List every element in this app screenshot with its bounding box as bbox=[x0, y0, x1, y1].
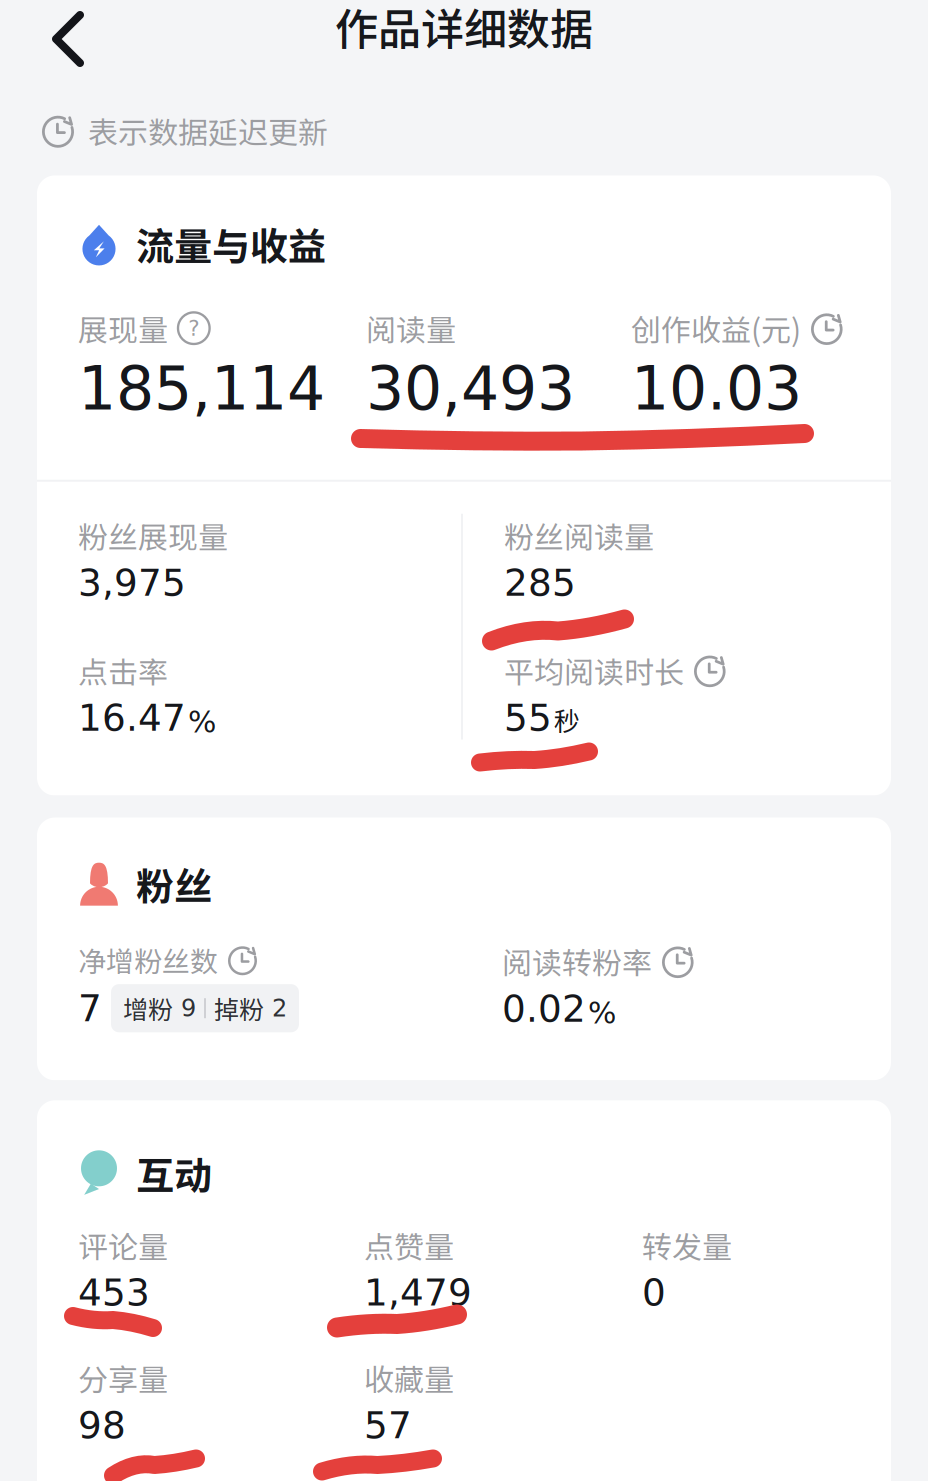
staticText: 创作收益(元) bbox=[631, 306, 801, 350]
staticText: 阅读量 bbox=[366, 306, 456, 350]
staticText: 185,114 bbox=[78, 354, 325, 424]
button[interactable]: Back bbox=[34, 1, 102, 77]
staticText: 7 bbox=[78, 986, 102, 1030]
staticText: 收藏量 bbox=[364, 1356, 454, 1400]
staticText: 秒 bbox=[554, 701, 580, 738]
staticText: 16.47 bbox=[78, 696, 186, 740]
staticText: 1,479 bbox=[364, 1271, 472, 1314]
staticText: 453 bbox=[78, 1271, 150, 1314]
staticText: 0 bbox=[642, 1271, 666, 1314]
staticText: 55 bbox=[504, 696, 552, 740]
staticText: 作品详细数据 bbox=[335, 0, 593, 57]
staticText: % bbox=[588, 996, 616, 1030]
staticText: 10.03 bbox=[631, 354, 802, 424]
staticText: 粉丝展现量 bbox=[78, 514, 228, 557]
staticText: 分享量 bbox=[78, 1356, 168, 1400]
staticText: 粉丝阅读量 bbox=[504, 514, 654, 557]
staticText: 评论量 bbox=[78, 1223, 168, 1267]
staticText: 转发量 bbox=[642, 1223, 732, 1267]
staticText: 57 bbox=[364, 1404, 412, 1447]
staticText: 掉粉 bbox=[214, 990, 264, 1026]
staticText: 粉丝 bbox=[136, 856, 212, 911]
staticText: % bbox=[188, 705, 216, 740]
staticText: 表示数据延迟更新 bbox=[88, 109, 328, 152]
staticText: 98 bbox=[78, 1404, 126, 1447]
staticText: 30,493 bbox=[366, 354, 575, 424]
staticText: 285 bbox=[504, 561, 576, 605]
staticText: 增粉 bbox=[123, 990, 173, 1026]
staticText: 2 bbox=[272, 994, 287, 1022]
staticText: 互动 bbox=[136, 1145, 212, 1200]
staticText: 3,975 bbox=[78, 561, 186, 605]
staticText: 点击率 bbox=[78, 649, 168, 692]
staticText: 0.02 bbox=[502, 987, 586, 1030]
staticText: 9 bbox=[181, 994, 196, 1022]
staticText: 流量与收益 bbox=[136, 216, 326, 271]
staticText: 平均阅读时长 bbox=[504, 649, 684, 692]
staticText: 净增粉丝数 bbox=[78, 940, 218, 980]
staticText: 阅读转粉率 bbox=[502, 940, 652, 983]
staticText: 展现量 bbox=[78, 306, 168, 350]
staticText: 点赞量 bbox=[364, 1223, 454, 1267]
staticText: ? bbox=[188, 316, 199, 341]
